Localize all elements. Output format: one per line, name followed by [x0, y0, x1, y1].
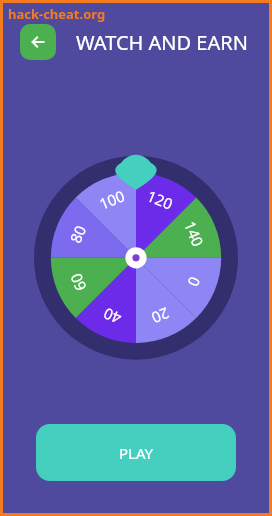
staticText: PLAY	[119, 443, 154, 463]
staticText: hack-cheat.org	[8, 5, 106, 23]
button[interactable]: Back	[20, 24, 56, 60]
button[interactable]: PLAY	[36, 424, 236, 481]
other: Spin wheel	[34, 145, 238, 371]
staticText: WATCH AND EARN	[76, 29, 248, 56]
